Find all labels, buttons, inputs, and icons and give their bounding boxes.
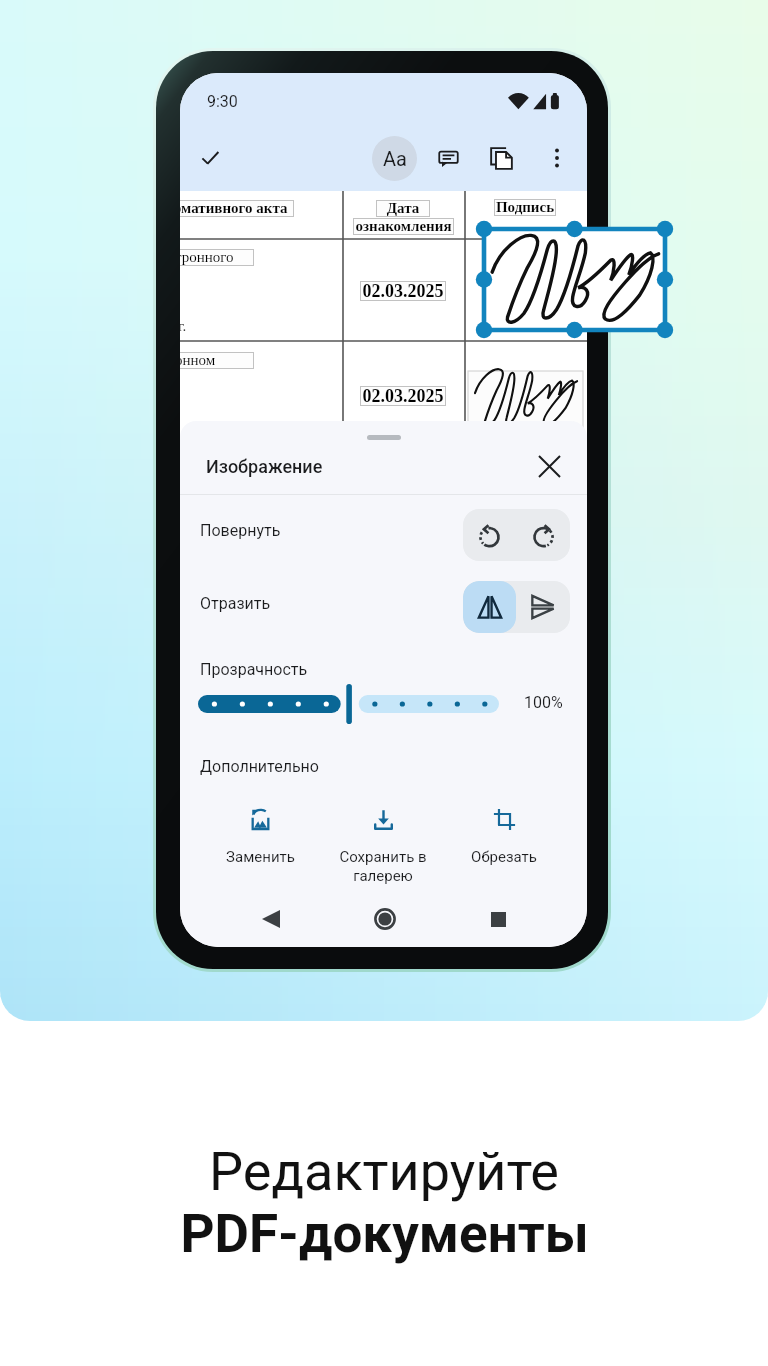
button[interactable]: Заменить — [200, 808, 320, 866]
staticText: г. — [180, 318, 187, 335]
button[interactable]: Close — [531, 448, 567, 484]
button[interactable]: Done — [186, 134, 234, 182]
button[interactable]: More options — [535, 136, 579, 180]
button[interactable]: Обрезать — [444, 808, 564, 866]
staticText: Заменить — [226, 848, 295, 866]
button[interactable]: Сохранить в галерею — [323, 808, 443, 885]
staticText: Aa — [383, 147, 407, 170]
staticText: онном — [180, 352, 253, 369]
staticText: рмативного акта — [180, 200, 293, 217]
staticText: 02.03.2025 — [361, 281, 445, 301]
staticText: 02.03.2025 — [361, 386, 445, 406]
staticText: ознакомления — [354, 218, 453, 235]
staticText: Прозрачность — [200, 660, 308, 679]
button[interactable]: Recents — [474, 895, 522, 943]
staticText: Обрезать — [471, 848, 537, 866]
staticText: тронного — [180, 249, 253, 266]
staticText: Подпись — [495, 199, 555, 216]
staticText: Редактируйте — [209, 1140, 559, 1203]
staticText: 9:30 — [207, 92, 238, 111]
staticText: 100% — [524, 693, 563, 712]
button[interactable]: Copy — [479, 136, 523, 180]
staticText: Повернуть — [200, 521, 281, 540]
button[interactable]: Aa — [372, 136, 417, 181]
button[interactable]: left — [463, 509, 516, 561]
staticText: PDF-документы — [180, 1203, 589, 1265]
staticText: Изображение — [206, 456, 323, 477]
button[interactable]: right — [516, 509, 570, 561]
staticText: Дата — [377, 200, 429, 217]
button[interactable]: Back — [247, 895, 295, 943]
button[interactable]: Home — [361, 895, 409, 943]
staticText: Отразить — [200, 594, 271, 613]
button[interactable]: Comment — [426, 136, 470, 180]
button[interactable]: left — [463, 581, 516, 633]
button[interactable]: right — [516, 581, 570, 633]
staticText: Сохранить в галерею — [339, 848, 427, 885]
staticText: Дополнительно — [200, 757, 319, 776]
